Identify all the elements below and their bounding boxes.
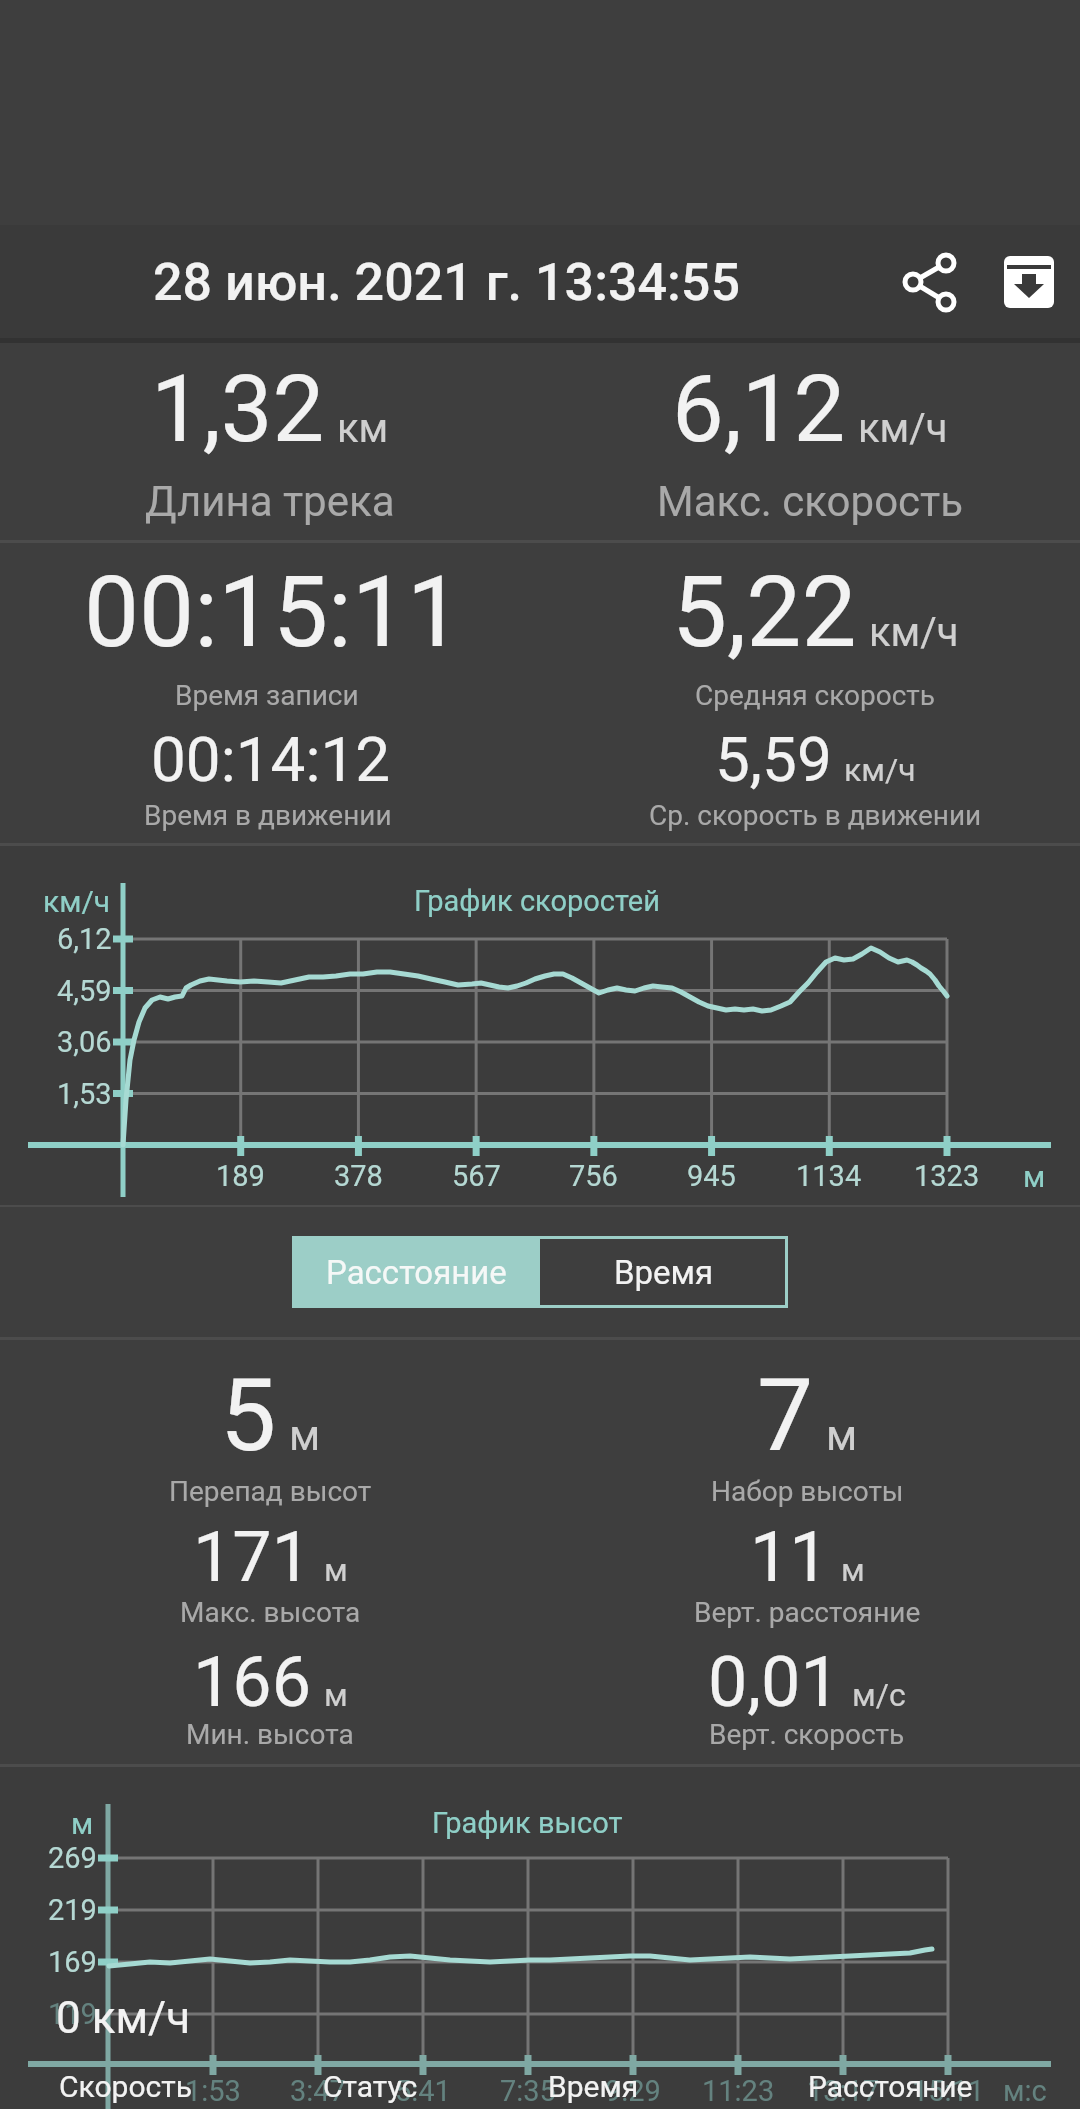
- staticText: км: [337, 405, 389, 452]
- staticText: Длина трека: [145, 477, 395, 526]
- staticText: м: [324, 1676, 348, 1714]
- staticText: Расстояние: [808, 2069, 973, 2104]
- staticText: 15:11: [912, 2074, 985, 2108]
- button[interactable]: Статус: [290, 2060, 450, 2112]
- staticText: Скорость: [59, 2069, 192, 2104]
- staticText: Макс. скорость: [657, 477, 964, 526]
- staticText: Время: [614, 1253, 714, 1292]
- staticText: Перепад высот: [169, 1475, 372, 1508]
- staticText: 7:35: [500, 2074, 556, 2108]
- staticText: 169: [48, 1945, 97, 1979]
- staticText: Средняя скорость: [695, 679, 936, 712]
- staticText: м: [826, 1411, 858, 1460]
- staticText: 1,53: [57, 1077, 112, 1111]
- staticText: График скоростей: [414, 884, 660, 918]
- staticText: Расстояние: [326, 1253, 507, 1292]
- staticText: 1323: [914, 1159, 980, 1193]
- staticText: 219: [48, 1893, 97, 1927]
- staticText: 945: [687, 1159, 736, 1193]
- staticText: График высот: [432, 1806, 623, 1840]
- staticText: Верт. скорость: [709, 1718, 905, 1751]
- button[interactable]: [885, 240, 975, 326]
- staticText: 3,06: [57, 1025, 112, 1059]
- staticText: 7: [757, 1357, 814, 1474]
- staticText: Время записи: [175, 679, 359, 712]
- button[interactable]: Скорость: [40, 2060, 210, 2112]
- staticText: 11: [750, 1516, 829, 1598]
- staticText: 6,12: [57, 922, 112, 956]
- staticText: Ср. скорость в движении: [649, 799, 982, 832]
- staticText: 756: [569, 1159, 618, 1193]
- staticText: км/ч: [844, 751, 916, 789]
- staticText: Макс. высота: [180, 1596, 361, 1629]
- staticText: 0,01: [708, 1641, 840, 1723]
- staticText: 28 июн. 2021 г. 13:34:55: [153, 252, 740, 313]
- staticText: Время: [548, 2069, 639, 2104]
- staticText: 567: [452, 1159, 501, 1193]
- staticText: м: [71, 1806, 94, 1841]
- button[interactable]: Расстояние: [292, 1236, 540, 1308]
- button[interactable]: Время: [540, 1236, 788, 1308]
- staticText: Статус: [323, 2069, 418, 2104]
- staticText: м: [841, 1551, 865, 1589]
- button[interactable]: [998, 252, 1060, 314]
- staticText: 1:53: [185, 2074, 241, 2108]
- staticText: м: [1023, 1159, 1046, 1194]
- staticText: 9:29: [605, 2074, 661, 2108]
- staticText: 119: [48, 1997, 97, 2031]
- staticText: 1134: [796, 1159, 862, 1193]
- staticText: 166: [193, 1641, 312, 1723]
- button[interactable]: Расстояние: [790, 2060, 990, 2112]
- staticText: 4,59: [57, 974, 112, 1008]
- staticText: 189: [216, 1159, 265, 1193]
- staticText: 00:14:12: [151, 723, 391, 796]
- staticText: Верт. расстояние: [694, 1596, 921, 1629]
- staticText: м/с: [852, 1676, 906, 1714]
- button[interactable]: Время: [515, 2060, 671, 2112]
- staticText: Время в движении: [144, 799, 392, 832]
- staticText: км/ч: [869, 609, 959, 656]
- staticText: м: [289, 1411, 321, 1460]
- staticText: м:с: [1003, 2074, 1047, 2108]
- staticText: 11:23: [702, 2074, 775, 2108]
- staticText: 171: [193, 1516, 312, 1598]
- staticText: Мин. высота: [186, 1718, 354, 1751]
- staticText: 3:47: [290, 2074, 346, 2108]
- staticText: км/ч: [858, 405, 948, 452]
- staticText: м: [324, 1551, 348, 1589]
- staticText: 5: [220, 1357, 277, 1474]
- staticText: 13:17: [807, 2074, 880, 2108]
- staticText: 5,22: [672, 555, 857, 670]
- staticText: 269: [48, 1841, 97, 1875]
- staticText: 00:15:11: [84, 555, 462, 670]
- staticText: 6,12: [672, 356, 846, 464]
- staticText: 5:41: [395, 2074, 451, 2108]
- staticText: 1,32: [151, 356, 325, 464]
- staticText: км/ч: [43, 884, 111, 919]
- staticText: 378: [334, 1159, 383, 1193]
- staticText: 0 км/ч: [56, 1992, 191, 2044]
- staticText: 5,59: [715, 723, 832, 796]
- staticText: Набор высоты: [711, 1475, 904, 1508]
